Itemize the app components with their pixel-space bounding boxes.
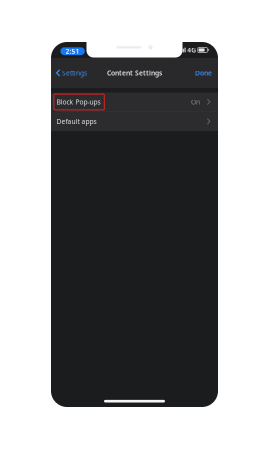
staticText: Default apps bbox=[56, 117, 96, 126]
staticText: Block Pop-ups bbox=[56, 98, 100, 106]
staticText: Done bbox=[195, 69, 212, 77]
staticText: On bbox=[191, 98, 200, 106]
button[interactable]: Done bbox=[195, 64, 218, 82]
staticText: 2:51 bbox=[66, 47, 80, 56]
staticText: Settings bbox=[62, 69, 87, 77]
staticText: Content Settings bbox=[107, 69, 162, 77]
button[interactable]: Default apps bbox=[51, 112, 218, 131]
button[interactable]: Settings bbox=[51, 64, 87, 82]
staticText: 4G bbox=[187, 46, 196, 54]
button[interactable]: Block Pop-ups bbox=[51, 92, 218, 111]
